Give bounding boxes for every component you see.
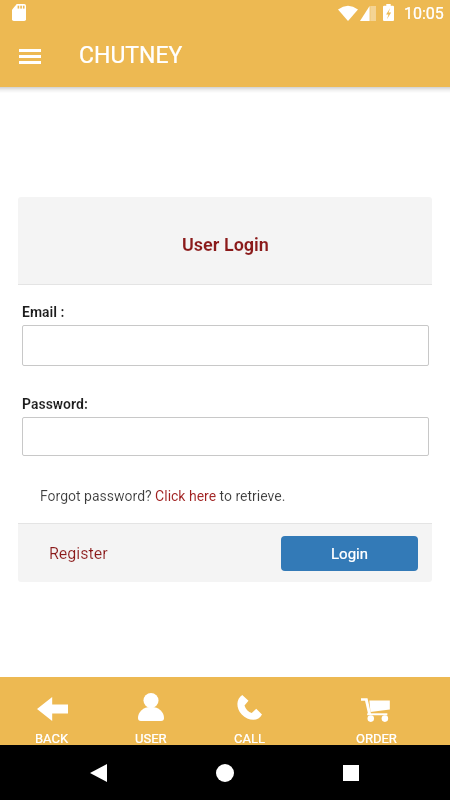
- staticText: BACK: [35, 731, 69, 746]
- staticText: Email :: [22, 304, 65, 320]
- button[interactable]: ORDER: [332, 677, 420, 745]
- staticText: USER: [135, 731, 167, 746]
- button[interactable]: Email input field: [22, 325, 429, 366]
- button[interactable]: Back: [74, 749, 122, 797]
- staticText: ORDER: [356, 731, 397, 746]
- staticText: CALL: [234, 731, 265, 746]
- staticText: User Login: [182, 234, 269, 255]
- staticText: CHUTNEY: [79, 42, 183, 69]
- button[interactable]: Register: [39, 537, 118, 570]
- staticText: Password:: [22, 396, 88, 412]
- button[interactable]: Recent apps: [327, 749, 375, 797]
- button[interactable]: USER: [107, 677, 195, 745]
- button[interactable]: Forgot password? Click here to retrieve.: [40, 488, 286, 504]
- button[interactable]: Password input field: [22, 417, 429, 456]
- button[interactable]: CALL: [205, 677, 293, 745]
- button[interactable]: Login: [281, 536, 418, 571]
- button[interactable]: Open navigation menu: [8, 34, 52, 78]
- button[interactable]: Home: [201, 749, 249, 797]
- staticText: Login: [331, 545, 368, 563]
- staticText: Register: [49, 544, 108, 563]
- staticText: 10:05: [404, 4, 444, 23]
- button[interactable]: BACK: [8, 677, 96, 745]
